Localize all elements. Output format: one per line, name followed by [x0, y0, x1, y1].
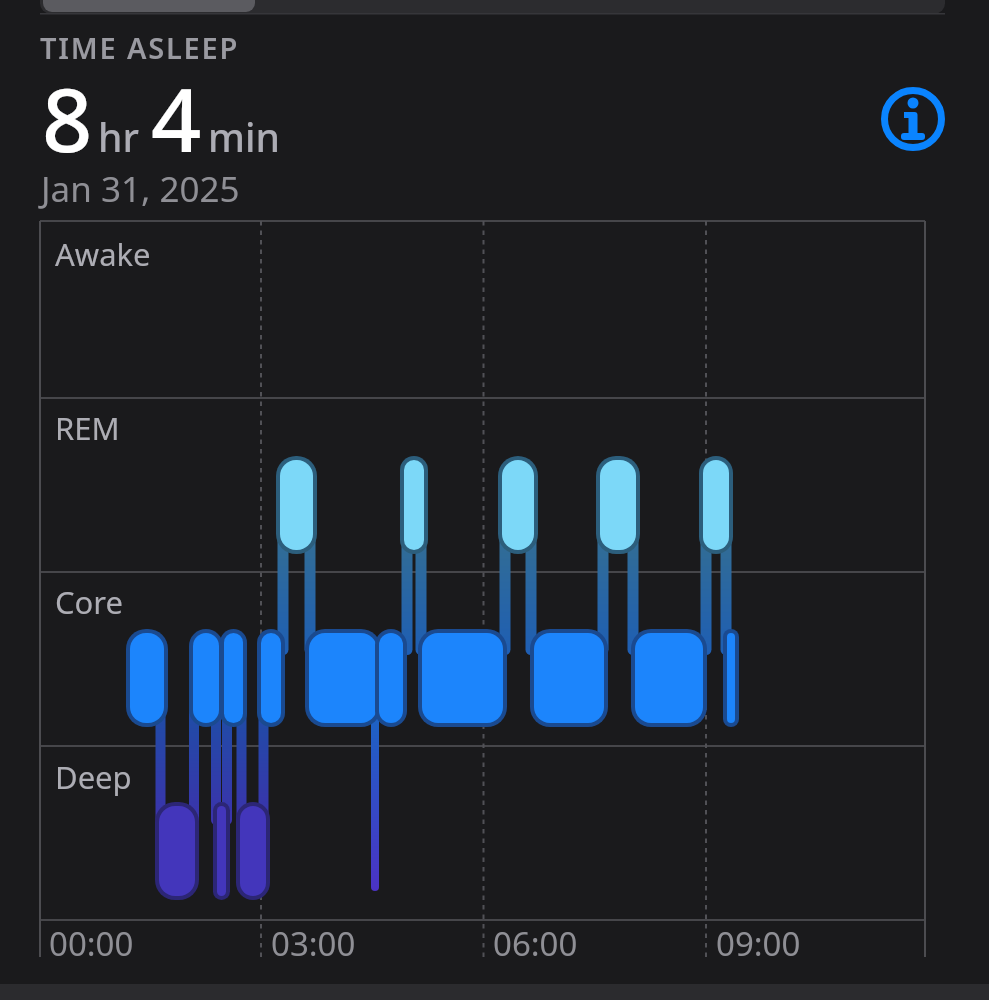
staticText: min	[208, 110, 280, 163]
staticText: TIME ASLEEP	[40, 28, 240, 67]
staticText: hr	[98, 110, 139, 163]
staticText: REM	[55, 407, 120, 449]
button[interactable]	[40, 0, 255, 14]
staticText: Jan 31, 2025	[41, 165, 240, 213]
staticText: 03:00	[271, 921, 356, 966]
staticText: 4	[151, 58, 202, 178]
staticText: Core	[55, 581, 124, 623]
staticText: 09:00	[716, 921, 801, 966]
button[interactable]	[881, 87, 945, 151]
staticText: 00:00	[49, 921, 134, 966]
staticText: Deep	[55, 756, 132, 798]
staticText: 8	[42, 58, 93, 178]
staticText: 06:00	[493, 921, 578, 966]
staticText: Awake	[55, 233, 151, 275]
